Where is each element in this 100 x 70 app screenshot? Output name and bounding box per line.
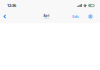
button[interactable]: Edit <box>72 14 78 19</box>
staticText: 8:16 p.m. <box>44 17 49 19</box>
staticText: 12:36 <box>7 3 16 8</box>
staticText: Apri <box>43 14 49 17</box>
button[interactable]: Account <box>88 14 93 19</box>
button[interactable]: Back <box>0 11 12 22</box>
staticText: Edit <box>72 14 78 19</box>
